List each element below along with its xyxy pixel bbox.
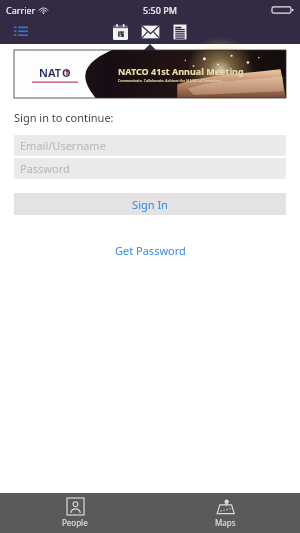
- button[interactable]: Password: [14, 158, 286, 179]
- button[interactable]: Schedule: [107, 20, 133, 44]
- staticText: Sign In: [132, 197, 168, 212]
- staticText: O: [62, 65, 71, 80]
- button[interactable]: Documents: [167, 20, 193, 44]
- staticText: Carrier: [6, 4, 36, 16]
- staticText: Email/Username: [20, 138, 106, 153]
- staticText: Communicate. Collaborate. Achieve the MA…: [118, 78, 225, 83]
- button[interactable]: Sign In: [14, 193, 286, 215]
- staticText: NAT: [39, 65, 62, 80]
- button[interactable]: Email/Username: [14, 135, 286, 156]
- staticText: People: [62, 517, 88, 528]
- staticText: Password: [20, 161, 70, 176]
- staticText: Sign in to continue:: [14, 110, 114, 125]
- button[interactable]: People: [0, 493, 150, 533]
- button[interactable]: Messages: [137, 20, 163, 44]
- staticText: 5:50 PM: [143, 4, 177, 16]
- button[interactable]: Menu: [10, 21, 32, 43]
- staticText: Maps: [215, 517, 236, 528]
- button[interactable]: NAT: [14, 50, 286, 98]
- staticText: Get Password: [115, 243, 186, 258]
- button[interactable]: Get Password: [109, 241, 192, 260]
- button[interactable]: Maps: [150, 493, 300, 533]
- staticText: NATCO 41st Annual Meeting: [118, 65, 244, 77]
